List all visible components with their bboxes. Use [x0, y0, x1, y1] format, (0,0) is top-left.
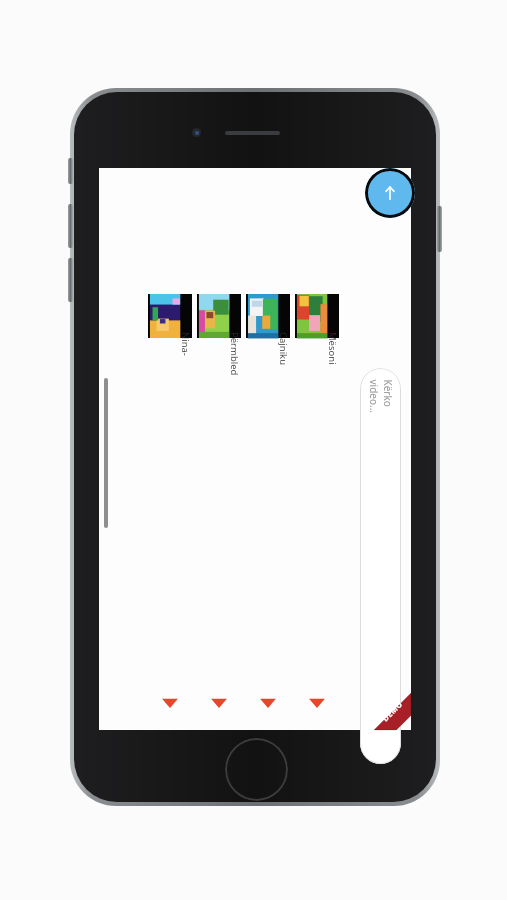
staticText: DEMO [380, 699, 405, 723]
button[interactable]: Çajniku dhe këngët më të mira për fëmijë… [246, 294, 290, 714]
staticText: Çajniku dhe këngët më të mira për fëmijë… [277, 332, 290, 376]
button[interactable]: Scroll to top [365, 168, 415, 218]
button[interactable]: More [259, 697, 277, 709]
staticText: Nina-Nana | Ninulla | Ga Ga [179, 332, 192, 376]
button[interactable]: More [308, 697, 326, 709]
button[interactable]: Përmbledhje me këngë për fëmijë | Ga Ga [197, 294, 241, 714]
button[interactable]: DEMO [355, 674, 411, 730]
button[interactable]: More [161, 697, 179, 709]
button[interactable]: Home [225, 738, 288, 801]
staticText: Përmbledhje me këngë për fëmijë | Ga Ga [228, 332, 241, 376]
button[interactable]: Kërko video... [360, 368, 401, 764]
button[interactable]: Mësoni numrat | Ga Ga [295, 294, 339, 714]
button[interactable]: More [210, 697, 228, 709]
staticText: Kërko video... [366, 379, 394, 420]
staticText: Mësoni numrat | Ga Ga [326, 332, 339, 376]
button[interactable]: Nina-Nana | Ninulla | Ga Ga [148, 294, 192, 714]
